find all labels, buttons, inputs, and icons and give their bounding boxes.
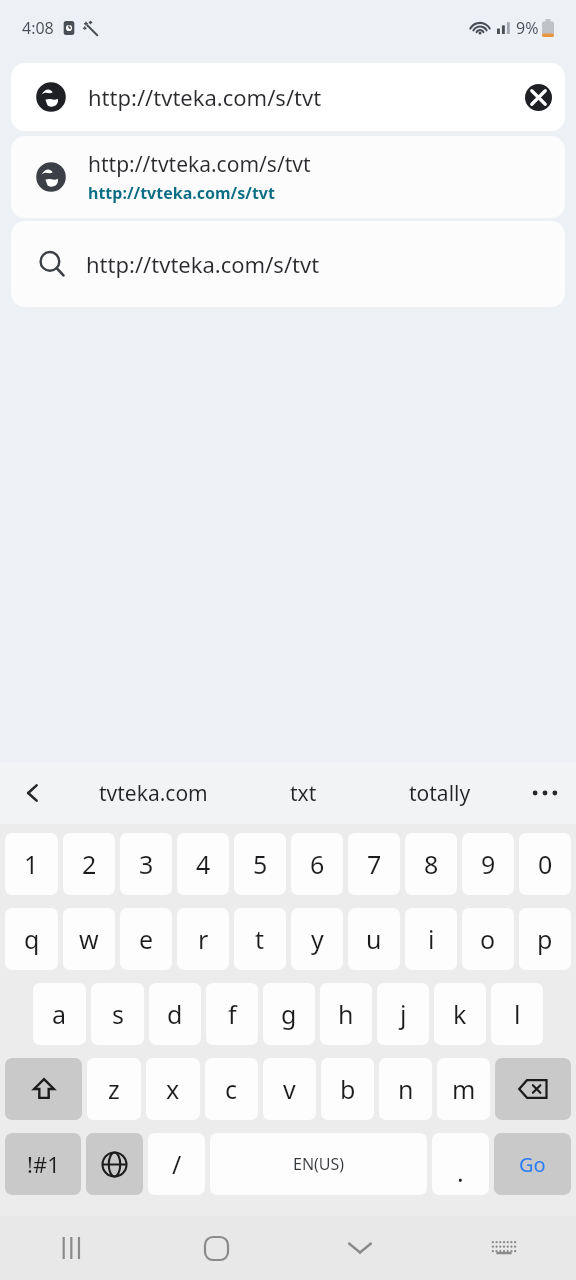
button[interactable]: . xyxy=(432,1133,489,1195)
button[interactable]: Change language xyxy=(86,1133,143,1195)
staticText: y xyxy=(311,922,324,956)
staticText: r xyxy=(198,922,209,956)
staticText: http://tvteka.com/s/tvt xyxy=(86,249,320,279)
staticText: w xyxy=(79,922,99,956)
button[interactable]: totally xyxy=(365,762,514,824)
staticText: m xyxy=(452,1072,476,1106)
staticText: 5 xyxy=(253,847,268,881)
staticText: 0 xyxy=(538,847,553,881)
staticText: a xyxy=(52,997,67,1031)
button[interactable]: s xyxy=(91,983,144,1045)
button[interactable]: 0 xyxy=(519,833,571,895)
button[interactable]: h xyxy=(320,983,372,1045)
button[interactable]: EN(US) xyxy=(210,1133,427,1195)
button[interactable]: 5 xyxy=(234,833,286,895)
button[interactable]: v xyxy=(263,1058,316,1120)
staticText: EN(US) xyxy=(293,1153,345,1175)
button[interactable]: i xyxy=(405,908,457,970)
button[interactable]: 9 xyxy=(462,833,514,895)
button[interactable]: g xyxy=(263,983,315,1045)
button[interactable]: tvteka.com xyxy=(66,762,241,824)
staticText: l xyxy=(514,997,521,1031)
button[interactable]: 4 xyxy=(177,833,229,895)
staticText: e xyxy=(139,922,154,956)
staticText: 6 xyxy=(310,847,325,881)
staticText: j xyxy=(400,997,407,1031)
button[interactable]: c xyxy=(205,1058,258,1120)
staticText: u xyxy=(366,922,382,956)
staticText: 3 xyxy=(139,847,154,881)
button[interactable]: l xyxy=(491,983,543,1045)
staticText: g xyxy=(281,997,297,1031)
staticText: p xyxy=(537,922,553,956)
staticText: 8 xyxy=(424,847,439,881)
staticText: s xyxy=(112,997,124,1031)
staticText: c xyxy=(225,1072,238,1106)
button[interactable]: o xyxy=(462,908,514,970)
button[interactable]: p xyxy=(519,908,571,970)
button[interactable]: u xyxy=(348,908,400,970)
button[interactable]: z xyxy=(87,1058,141,1120)
button[interactable]: Backspace xyxy=(495,1058,571,1120)
button[interactable]: 3 xyxy=(120,833,172,895)
staticText: o xyxy=(480,922,496,956)
button[interactable]: n xyxy=(379,1058,432,1120)
button[interactable]: a xyxy=(33,983,86,1045)
button[interactable]: http://tvteka.com/s/tvt xyxy=(11,63,565,131)
staticText: 1 xyxy=(24,847,39,881)
staticText: k xyxy=(453,997,467,1031)
button[interactable]: Hide keyboard xyxy=(288,1216,432,1280)
button[interactable]: q xyxy=(5,908,58,970)
button[interactable]: y xyxy=(291,908,343,970)
staticText: v xyxy=(283,1072,296,1106)
button[interactable]: http://tvteka.com/s/tvt xyxy=(11,221,565,307)
staticText: q xyxy=(24,922,40,956)
staticText: h xyxy=(338,997,354,1031)
staticText: i xyxy=(428,922,435,956)
staticText: 7 xyxy=(367,847,382,881)
button[interactable]: f xyxy=(206,983,258,1045)
button[interactable]: t xyxy=(234,908,286,970)
button[interactable]: / xyxy=(148,1133,205,1195)
staticText: http://tvteka.com/s/tvt xyxy=(88,182,275,204)
staticText: txt xyxy=(290,779,317,808)
staticText: totally xyxy=(409,779,471,808)
staticText: 9% xyxy=(516,17,539,39)
button[interactable]: Recent apps xyxy=(0,1216,144,1280)
button[interactable]: e xyxy=(120,908,172,970)
staticText: d xyxy=(167,997,183,1031)
button[interactable]: !#1 xyxy=(5,1133,81,1195)
button[interactable]: m xyxy=(437,1058,490,1120)
button[interactable]: More options xyxy=(514,762,576,824)
button[interactable]: Clear text xyxy=(511,70,565,124)
button[interactable]: k xyxy=(434,983,486,1045)
button[interactable]: 6 xyxy=(291,833,343,895)
button[interactable]: w xyxy=(63,908,115,970)
staticText: http://tvteka.com/s/tvt xyxy=(88,150,311,179)
button[interactable]: Go xyxy=(494,1133,571,1195)
button[interactable]: Home xyxy=(144,1216,288,1280)
button[interactable]: r xyxy=(177,908,229,970)
button[interactable]: Keyboard switcher xyxy=(432,1216,576,1280)
staticText: 9 xyxy=(481,847,496,881)
button[interactable]: Previous suggestions xyxy=(0,762,66,824)
staticText: t xyxy=(255,922,265,956)
button[interactable]: http://tvteka.com/s/tvt xyxy=(11,136,565,218)
button[interactable]: txt xyxy=(241,762,365,824)
button[interactable]: Shift xyxy=(5,1058,82,1120)
button[interactable]: 1 xyxy=(5,833,58,895)
staticText: 4 xyxy=(196,847,211,881)
staticText: x xyxy=(166,1072,180,1106)
staticText: f xyxy=(228,997,237,1031)
button[interactable]: 7 xyxy=(348,833,400,895)
staticText: z xyxy=(108,1072,120,1106)
button[interactable]: 2 xyxy=(63,833,115,895)
button[interactable]: 8 xyxy=(405,833,457,895)
button[interactable]: j xyxy=(377,983,429,1045)
staticText: tvteka.com xyxy=(99,779,208,808)
button[interactable]: d xyxy=(149,983,201,1045)
staticText: 2 xyxy=(82,847,97,881)
button[interactable]: x xyxy=(146,1058,200,1120)
staticText: Go xyxy=(519,1151,546,1178)
button[interactable]: b xyxy=(321,1058,374,1120)
